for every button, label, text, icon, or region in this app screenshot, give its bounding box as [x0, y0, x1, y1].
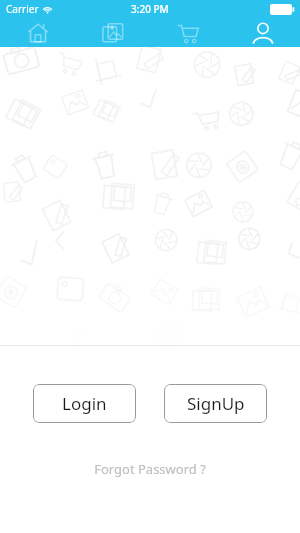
staticText: Login: [62, 392, 107, 415]
button[interactable]: Forgot Password ?: [0, 458, 300, 480]
staticText: Forgot Password ?: [94, 460, 206, 478]
staticText: 3:20 PM: [131, 2, 169, 16]
button[interactable]: Login: [33, 384, 136, 423]
button[interactable]: SignUp: [164, 384, 267, 423]
staticText: SignUp: [187, 392, 245, 415]
button[interactable]: Profile: [225, 18, 300, 47]
staticText: Carrier: [6, 2, 39, 16]
button[interactable]: Cart: [150, 18, 225, 47]
button[interactable]: Photos: [75, 18, 150, 47]
button[interactable]: Home: [0, 18, 75, 47]
